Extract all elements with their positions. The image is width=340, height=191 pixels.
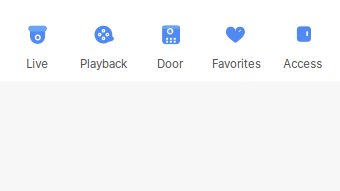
staticText: Door <box>157 57 183 71</box>
button[interactable]: Live <box>4 25 70 71</box>
staticText: Playback <box>80 57 127 71</box>
staticText: Live <box>26 57 48 71</box>
button[interactable]: Access <box>270 25 336 71</box>
staticText: Access <box>283 57 322 71</box>
button[interactable]: Favorites <box>203 25 270 71</box>
button[interactable]: Playback <box>70 25 137 71</box>
staticText: Favorites <box>212 57 261 71</box>
button[interactable]: Door <box>137 25 203 71</box>
